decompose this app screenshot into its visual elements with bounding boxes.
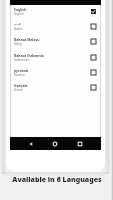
- button[interactable]: Select language: [91, 85, 96, 90]
- button[interactable]: Back: [26, 139, 36, 149]
- staticText: Arabic: [14, 27, 23, 31]
- staticText: русский: [14, 68, 29, 73]
- button[interactable]: Select language: [91, 55, 96, 60]
- button[interactable]: Select language: [91, 39, 96, 44]
- staticText: Bahasa Melayu: [14, 37, 40, 42]
- button[interactable]: Home: [50, 139, 60, 149]
- staticText: Russian: [14, 73, 25, 77]
- button[interactable]: français: [10, 81, 101, 96]
- staticText: Available in 6 Languages: [12, 175, 102, 185]
- staticText: French: [14, 88, 24, 92]
- staticText: Bahasa Indonesia: [14, 53, 44, 58]
- staticText: English: [14, 12, 24, 16]
- button[interactable]: العربية: [10, 20, 101, 35]
- button[interactable]: Bahasa Indonesia: [10, 51, 101, 66]
- staticText: English: [14, 7, 27, 12]
- staticText: Indonesian: [14, 58, 30, 62]
- button[interactable]: Select language: [91, 70, 96, 75]
- button[interactable]: Bahasa Melayu: [10, 35, 101, 50]
- button[interactable]: English: [10, 5, 101, 20]
- button[interactable]: русский: [10, 66, 101, 81]
- staticText: Malay: [14, 42, 23, 46]
- button[interactable]: Select language: [91, 9, 96, 14]
- button[interactable]: Recent apps: [75, 139, 85, 149]
- button[interactable]: Select language: [91, 24, 96, 29]
- staticText: العربية: [14, 23, 21, 25]
- staticText: français: [14, 83, 28, 88]
